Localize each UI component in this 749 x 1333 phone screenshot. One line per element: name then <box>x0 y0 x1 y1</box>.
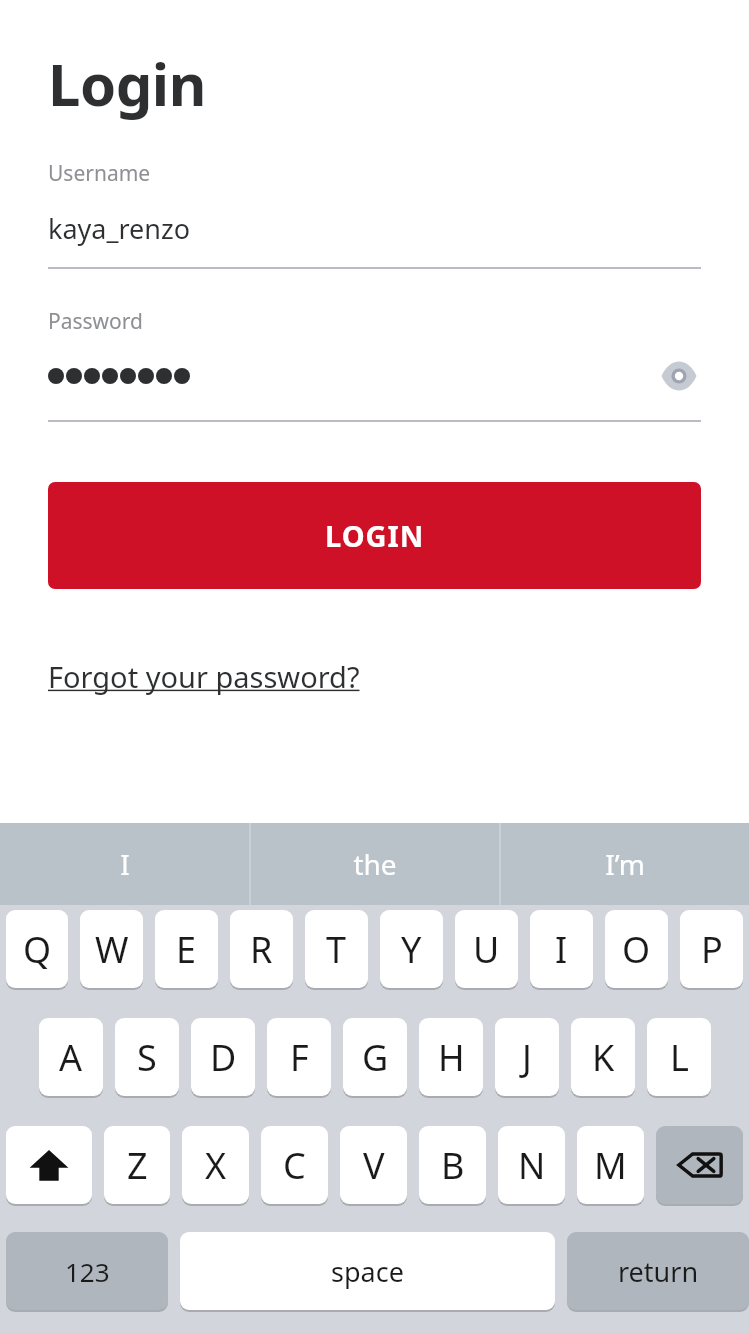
button[interactable]: Username <box>48 159 701 269</box>
button[interactable]: return <box>567 1232 749 1310</box>
button[interactable]: O <box>605 910 668 988</box>
staticText: LOGIN <box>325 516 425 555</box>
staticText: Z <box>127 1141 148 1190</box>
button[interactable]: Password <box>48 307 701 422</box>
staticText: G <box>362 1033 389 1082</box>
staticText: O <box>622 925 651 974</box>
button[interactable]: Backspace <box>656 1126 743 1204</box>
staticText: I’m <box>605 845 645 883</box>
staticText: E <box>176 925 197 974</box>
staticText: S <box>137 1033 157 1082</box>
button[interactable]: R <box>230 910 293 988</box>
button[interactable]: K <box>571 1018 635 1096</box>
staticText: the <box>353 845 397 883</box>
staticText: J <box>522 1033 532 1082</box>
button[interactable]: B <box>419 1126 486 1204</box>
staticText: F <box>290 1033 309 1082</box>
staticText: U <box>473 925 500 974</box>
button[interactable]: E <box>155 910 218 988</box>
button[interactable]: Show password <box>657 354 701 398</box>
button[interactable]: 123 <box>6 1232 168 1310</box>
staticText: Username <box>48 159 151 188</box>
staticText: R <box>250 925 273 974</box>
button[interactable]: X <box>182 1126 249 1204</box>
button[interactable]: space <box>180 1232 555 1310</box>
button[interactable]: Q <box>6 910 68 988</box>
button[interactable]: I <box>0 823 249 905</box>
staticText: I <box>555 925 568 974</box>
staticText: T <box>326 925 347 974</box>
staticText: M <box>594 1141 627 1190</box>
staticText: kaya_renzo <box>48 210 191 247</box>
staticText: B <box>441 1141 465 1190</box>
staticText: Password <box>48 307 143 336</box>
button[interactable]: the <box>251 823 499 905</box>
staticText: P <box>701 925 723 974</box>
staticText: space <box>331 1253 404 1290</box>
button[interactable]: D <box>191 1018 255 1096</box>
button[interactable]: W <box>80 910 143 988</box>
button[interactable]: Z <box>104 1126 170 1204</box>
button[interactable]: S <box>115 1018 179 1096</box>
button[interactable]: A <box>39 1018 103 1096</box>
button[interactable]: M <box>577 1126 644 1204</box>
button[interactable]: T <box>305 910 368 988</box>
button[interactable]: H <box>419 1018 483 1096</box>
staticText: N <box>518 1141 546 1190</box>
button[interactable]: Shift <box>6 1126 92 1204</box>
button[interactable]: G <box>343 1018 407 1096</box>
staticText: K <box>592 1033 615 1082</box>
staticText: A <box>59 1033 83 1082</box>
button[interactable]: F <box>267 1018 331 1096</box>
staticText: X <box>205 1141 227 1190</box>
staticText: Forgot your password? <box>48 657 360 696</box>
button[interactable]: C <box>261 1126 328 1204</box>
staticText: L <box>670 1033 689 1082</box>
staticText: I <box>120 845 130 883</box>
button[interactable]: LOGIN <box>48 482 701 589</box>
staticText: Login <box>48 44 206 123</box>
staticText: return <box>618 1253 699 1290</box>
staticText: D <box>210 1033 237 1082</box>
button[interactable]: I <box>530 910 593 988</box>
staticText: H <box>438 1033 465 1082</box>
button[interactable]: L <box>647 1018 711 1096</box>
staticText: 123 <box>65 1254 110 1289</box>
button[interactable]: V <box>340 1126 407 1204</box>
staticText: Y <box>401 925 422 974</box>
button[interactable]: J <box>495 1018 559 1096</box>
staticText: W <box>95 925 129 974</box>
button[interactable]: N <box>498 1126 565 1204</box>
button[interactable]: Y <box>380 910 443 988</box>
button[interactable]: U <box>455 910 518 988</box>
button[interactable]: Forgot your password? <box>48 657 360 696</box>
button[interactable]: P <box>680 910 743 988</box>
staticText: C <box>283 1141 306 1190</box>
staticText: Q <box>23 925 52 974</box>
button[interactable]: I’m <box>501 823 749 905</box>
staticText: V <box>363 1141 385 1190</box>
